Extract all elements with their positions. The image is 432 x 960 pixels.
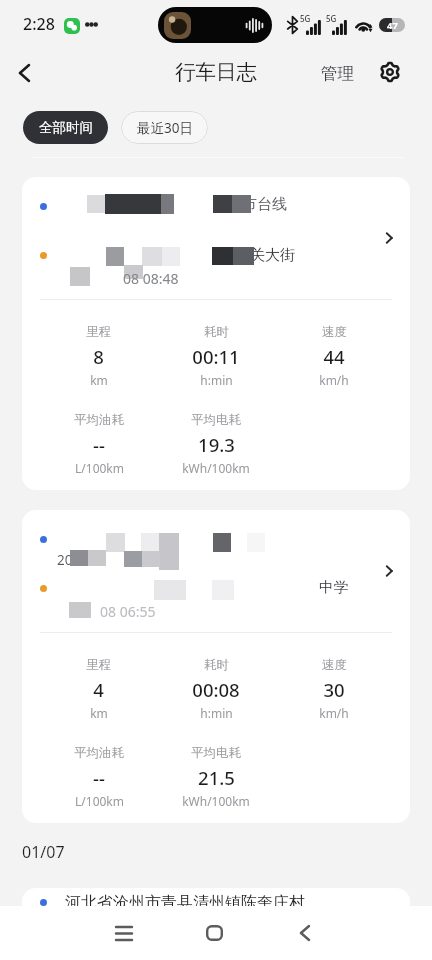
button[interactable]: Open trip detail <box>372 221 406 255</box>
staticText: 速度 <box>322 657 347 673</box>
staticText: h:min <box>200 372 233 388</box>
staticText: 中学 <box>319 578 348 596</box>
staticText: kWh/100km <box>182 793 250 809</box>
button[interactable]: 市台线 <box>22 177 410 490</box>
staticText: 全部时间 <box>39 119 93 136</box>
staticText: 44 <box>323 344 345 369</box>
staticText: 平均电耗 <box>191 412 241 428</box>
staticText: 08 06:55 <box>100 602 156 621</box>
staticText: 耗时 <box>204 657 229 673</box>
staticText: 4 <box>93 677 104 702</box>
button[interactable]: Home <box>191 910 237 956</box>
staticText: -- <box>93 765 105 790</box>
button[interactable]: Back <box>282 910 328 956</box>
staticText: -- <box>93 432 105 457</box>
staticText: 平均油耗 <box>74 745 124 761</box>
staticText: 00:08 <box>192 677 240 702</box>
staticText: 平均电耗 <box>191 745 241 761</box>
staticText: 平均油耗 <box>74 412 124 428</box>
staticText: km <box>90 705 108 721</box>
button[interactable]: 全部时间 <box>23 111 108 144</box>
staticText: 8 <box>93 344 104 369</box>
button[interactable]: 20… <box>22 510 410 823</box>
button[interactable]: 最近30日 <box>121 111 208 144</box>
staticText: 5G <box>326 13 337 24</box>
staticText: 河北省沧州市青县清州镇陈奎庄村 <box>65 893 305 913</box>
staticText: 00:11 <box>192 344 240 369</box>
button[interactable]: Recent apps <box>101 910 147 956</box>
staticText: 08 08:48 <box>123 269 179 288</box>
staticText: h:min <box>200 705 233 721</box>
staticText: 20… <box>57 551 84 569</box>
staticText: 里程 <box>86 324 111 340</box>
staticText: 2:28 <box>23 13 55 35</box>
button[interactable]: 管理 <box>315 55 360 92</box>
staticText: 47 <box>387 19 398 32</box>
staticText: 关大街 <box>250 246 295 265</box>
staticText: 里程 <box>86 657 111 673</box>
button[interactable]: Settings <box>371 53 409 91</box>
staticText: 5G <box>300 13 311 24</box>
staticText: 行车日志 <box>175 59 257 85</box>
button[interactable]: Open trip detail <box>372 554 406 588</box>
button[interactable]: 河北省沧州市青县清州镇陈奎庄村 <box>22 888 410 928</box>
staticText: 市台线 <box>242 195 287 214</box>
staticText: 耗时 <box>204 324 229 340</box>
button[interactable]: Back <box>2 51 46 95</box>
staticText: L/100km <box>75 793 124 809</box>
staticText: 速度 <box>322 324 347 340</box>
staticText: kWh/100km <box>182 460 250 476</box>
staticText: km/h <box>319 372 349 388</box>
staticText: km/h <box>319 705 349 721</box>
staticText: 管理 <box>321 63 354 84</box>
staticText: L/100km <box>75 460 124 476</box>
staticText: 19.3 <box>198 432 235 457</box>
staticText: 最近30日 <box>137 119 193 137</box>
staticText: km <box>90 372 108 388</box>
staticText: 30 <box>323 677 345 702</box>
staticText: 21.5 <box>198 765 235 790</box>
staticText: 01/07 <box>22 841 65 863</box>
